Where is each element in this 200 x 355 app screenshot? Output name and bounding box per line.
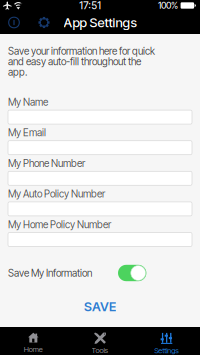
button[interactable]: Save My Information xyxy=(118,265,146,281)
staticText: 100% xyxy=(158,0,178,11)
staticText: My Phone Number xyxy=(8,157,85,169)
staticText: App Settings xyxy=(63,15,136,30)
staticText: Save My Information xyxy=(8,267,92,279)
staticText: Settings xyxy=(154,346,179,355)
button[interactable]: SAVE xyxy=(8,300,192,312)
staticText: My Email xyxy=(8,127,46,139)
staticText: SAVE xyxy=(84,299,116,314)
staticText: 17:51 xyxy=(79,0,101,12)
staticText: My Name xyxy=(8,96,48,108)
button[interactable]: Settings xyxy=(34,11,54,34)
staticText: My Auto Policy Number xyxy=(8,188,105,200)
staticText: My Home Policy Number xyxy=(8,218,111,230)
staticText: Tools xyxy=(91,346,108,355)
button[interactable]: Information xyxy=(4,11,24,34)
button[interactable]: Settings xyxy=(133,327,200,355)
button[interactable]: Home xyxy=(0,327,67,355)
staticText: Home xyxy=(24,345,43,354)
button[interactable]: Tools xyxy=(67,327,133,355)
staticText: Save your information here for quick and… xyxy=(8,45,155,78)
